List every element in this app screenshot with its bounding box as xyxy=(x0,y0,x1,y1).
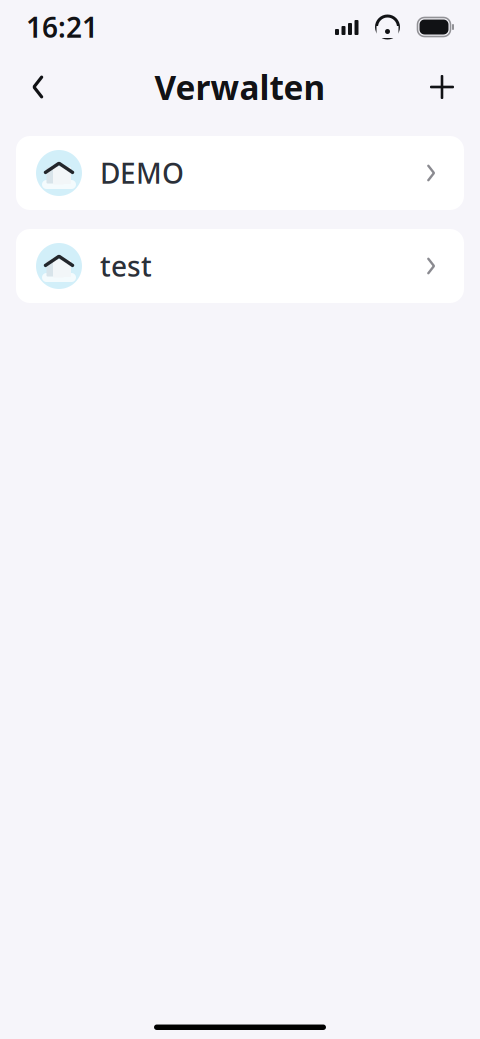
button[interactable]: DEMO xyxy=(16,136,464,210)
button[interactable]: Add xyxy=(416,61,468,113)
staticText: test xyxy=(100,247,152,285)
staticText: 16:21 xyxy=(26,8,98,46)
staticText: Verwalten xyxy=(154,65,325,109)
staticText: DEMO xyxy=(100,154,184,192)
button[interactable]: Back xyxy=(12,61,64,113)
button[interactable]: test xyxy=(16,229,464,303)
